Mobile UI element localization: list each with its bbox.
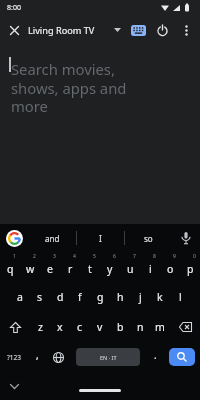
staticText: , bbox=[36, 348, 39, 362]
staticText: v bbox=[97, 320, 103, 334]
staticText: y bbox=[107, 262, 113, 276]
button[interactable]: d bbox=[50, 282, 70, 312]
button[interactable]: j bbox=[130, 282, 150, 312]
button[interactable] bbox=[175, 19, 197, 41]
button[interactable] bbox=[126, 18, 150, 42]
button[interactable] bbox=[172, 224, 200, 252]
button[interactable]: a bbox=[10, 282, 30, 312]
staticText: g bbox=[97, 290, 104, 304]
staticText: EN · IT bbox=[100, 354, 117, 361]
staticText: u bbox=[127, 262, 134, 276]
staticText: 0 bbox=[193, 253, 196, 260]
button[interactable]: v bbox=[90, 312, 110, 342]
staticText: s bbox=[37, 290, 43, 304]
staticText: . bbox=[154, 348, 157, 362]
staticText: i bbox=[149, 262, 152, 276]
staticText: 1 bbox=[13, 253, 16, 260]
button[interactable] bbox=[46, 342, 70, 372]
button[interactable]: I bbox=[77, 224, 124, 252]
staticText: f bbox=[78, 290, 82, 304]
staticText: ?123 bbox=[7, 353, 21, 362]
staticText: 3 bbox=[53, 253, 56, 260]
button[interactable]: o bbox=[160, 252, 180, 282]
staticText: Search movies, shows, apps and more bbox=[11, 59, 127, 116]
staticText: h bbox=[117, 290, 124, 304]
staticText: w bbox=[26, 262, 35, 276]
button[interactable]: x bbox=[50, 312, 70, 342]
button[interactable]: . bbox=[146, 342, 164, 372]
button[interactable]: m bbox=[150, 312, 170, 342]
button[interactable]: EN · IT bbox=[70, 342, 146, 372]
button[interactable]: h bbox=[110, 282, 130, 312]
button[interactable] bbox=[0, 224, 28, 252]
staticText: n bbox=[137, 320, 144, 334]
staticText: l bbox=[179, 290, 182, 304]
button[interactable] bbox=[164, 342, 200, 372]
button[interactable]: r bbox=[60, 252, 80, 282]
button[interactable]: f bbox=[70, 282, 90, 312]
button[interactable]: y bbox=[100, 252, 120, 282]
button[interactable]: , bbox=[28, 342, 46, 372]
staticText: I bbox=[99, 233, 102, 244]
button[interactable]: e bbox=[40, 252, 60, 282]
staticText: b bbox=[117, 320, 124, 334]
staticText: q bbox=[7, 262, 14, 276]
staticText: o bbox=[167, 262, 174, 276]
button[interactable]: l bbox=[170, 282, 190, 312]
staticText: z bbox=[38, 320, 43, 334]
staticText: 8 bbox=[153, 253, 156, 260]
staticText: d bbox=[57, 290, 64, 304]
button[interactable]: i bbox=[140, 252, 160, 282]
button[interactable]: w bbox=[20, 252, 40, 282]
staticText: p bbox=[187, 262, 194, 276]
button[interactable]: u bbox=[120, 252, 140, 282]
staticText: c bbox=[77, 320, 83, 334]
staticText: and bbox=[45, 233, 60, 244]
staticText: k bbox=[157, 290, 163, 304]
staticText: j bbox=[139, 290, 142, 304]
staticText: x bbox=[57, 320, 63, 334]
button[interactable] bbox=[0, 16, 28, 44]
staticText: 2 bbox=[33, 253, 36, 260]
staticText: e bbox=[47, 262, 53, 276]
staticText: 7 bbox=[133, 253, 136, 260]
button[interactable]: Living Room TV bbox=[28, 24, 95, 37]
button[interactable] bbox=[0, 312, 30, 342]
button[interactable]: t bbox=[80, 252, 100, 282]
staticText: 6 bbox=[113, 253, 116, 260]
staticText: so bbox=[144, 233, 153, 244]
staticText: 4 bbox=[73, 253, 76, 260]
button[interactable]: z bbox=[30, 312, 50, 342]
staticText: m bbox=[155, 320, 165, 334]
button[interactable]: n bbox=[130, 312, 150, 342]
button[interactable] bbox=[4, 376, 24, 396]
staticText: 8:00 bbox=[7, 3, 21, 13]
staticText: r bbox=[68, 262, 73, 276]
button[interactable]: q bbox=[0, 252, 20, 282]
button[interactable]: b bbox=[110, 312, 130, 342]
staticText: 5 bbox=[93, 253, 96, 260]
button[interactable]: so bbox=[125, 224, 172, 252]
button[interactable]: s bbox=[30, 282, 50, 312]
button[interactable] bbox=[170, 312, 200, 342]
button[interactable] bbox=[150, 18, 174, 42]
staticText: a bbox=[17, 290, 23, 304]
button[interactable] bbox=[110, 16, 124, 44]
button[interactable]: c bbox=[70, 312, 90, 342]
button[interactable]: p bbox=[180, 252, 200, 282]
staticText: t bbox=[88, 262, 92, 276]
staticText: 9 bbox=[173, 253, 176, 260]
button[interactable]: ?123 bbox=[0, 342, 28, 372]
button[interactable]: and bbox=[28, 224, 76, 252]
button[interactable]: k bbox=[150, 282, 170, 312]
button[interactable]: g bbox=[90, 282, 110, 312]
